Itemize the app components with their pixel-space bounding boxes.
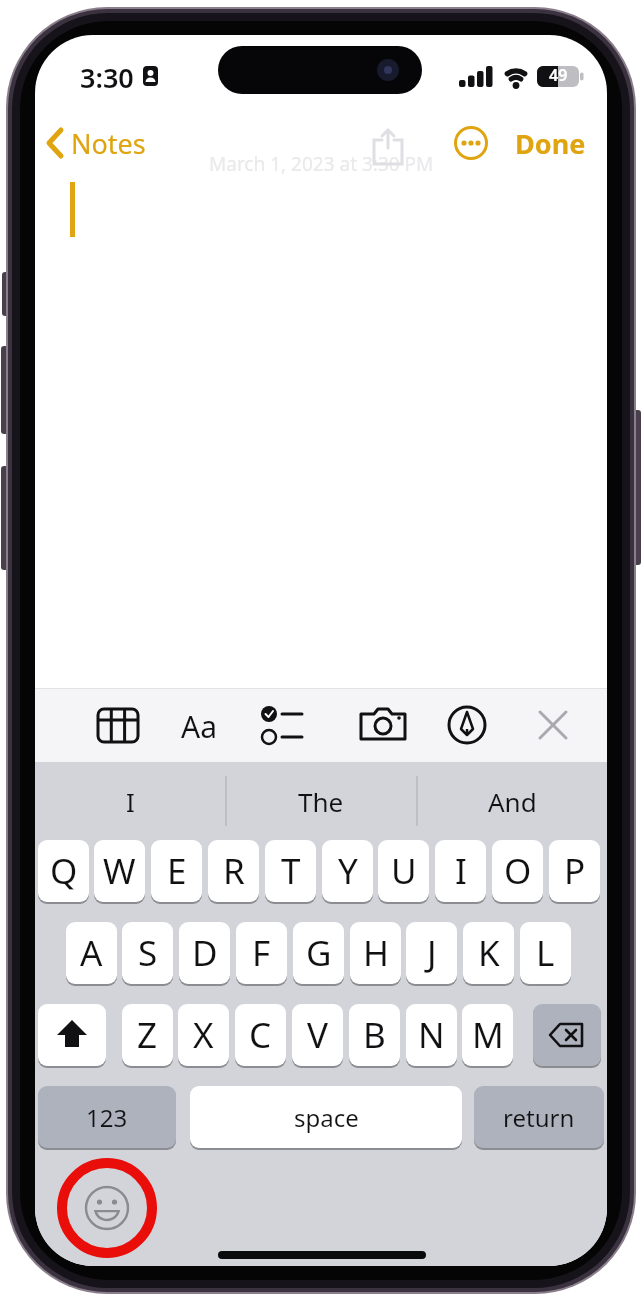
button[interactable]: And bbox=[417, 762, 607, 840]
button[interactable]: T bbox=[265, 840, 316, 902]
button[interactable]: return bbox=[474, 1086, 604, 1148]
button[interactable]: Z bbox=[122, 1004, 173, 1066]
button[interactable]: P bbox=[549, 840, 600, 902]
staticText: P bbox=[564, 847, 586, 895]
staticText: K bbox=[478, 929, 500, 977]
staticText: U bbox=[391, 847, 417, 895]
button[interactable]: space bbox=[190, 1086, 462, 1148]
staticText: return bbox=[503, 1101, 575, 1134]
staticText: S bbox=[138, 929, 158, 977]
staticText: W bbox=[103, 847, 136, 895]
button[interactable]: V bbox=[292, 1004, 343, 1066]
button[interactable] bbox=[372, 128, 404, 168]
button[interactable]: U bbox=[378, 840, 429, 902]
staticText: N bbox=[418, 1011, 445, 1059]
staticText: Notes bbox=[71, 125, 146, 162]
button[interactable]: Q bbox=[38, 840, 89, 902]
staticText: H bbox=[363, 929, 389, 977]
button[interactable]: X bbox=[178, 1004, 229, 1066]
staticText: Aa bbox=[181, 706, 217, 746]
staticText: G bbox=[306, 929, 332, 977]
staticText: V bbox=[307, 1011, 329, 1059]
staticText: C bbox=[249, 1011, 272, 1059]
staticText: O bbox=[504, 847, 532, 895]
staticText: 3:30 bbox=[80, 59, 134, 96]
staticText: Y bbox=[338, 847, 358, 895]
staticText: B bbox=[363, 1011, 386, 1059]
staticText: I bbox=[455, 847, 467, 895]
button[interactable]: Done bbox=[515, 125, 586, 162]
button[interactable]: Notes bbox=[71, 125, 146, 162]
staticText: J bbox=[427, 929, 437, 977]
staticText: Done bbox=[515, 125, 586, 162]
staticText: 123 bbox=[86, 1101, 128, 1134]
button[interactable]: N bbox=[406, 1004, 457, 1066]
button[interactable]: Aa bbox=[173, 706, 225, 746]
staticText: M bbox=[472, 1011, 504, 1059]
staticText: T bbox=[281, 847, 301, 895]
button[interactable]: The bbox=[226, 762, 416, 840]
button[interactable]: D bbox=[179, 922, 230, 984]
button[interactable] bbox=[531, 703, 575, 747]
button[interactable]: Y bbox=[322, 840, 373, 902]
staticText: X bbox=[193, 1011, 214, 1059]
button[interactable]: E bbox=[151, 840, 202, 902]
button[interactable]: R bbox=[208, 840, 259, 902]
button[interactable]: S bbox=[122, 922, 173, 984]
button[interactable] bbox=[41, 121, 161, 165]
button[interactable]: J bbox=[406, 922, 457, 984]
button[interactable] bbox=[38, 1004, 106, 1066]
staticText: A bbox=[80, 929, 103, 977]
button[interactable]: C bbox=[235, 1004, 286, 1066]
staticText: The bbox=[298, 784, 344, 819]
staticText: March 1, 2023 at 3:30 PM bbox=[209, 151, 434, 177]
staticText: And bbox=[488, 784, 537, 819]
button[interactable] bbox=[94, 701, 142, 749]
button[interactable]: I bbox=[35, 762, 225, 840]
staticText: I bbox=[126, 784, 135, 819]
staticText: D bbox=[192, 929, 218, 977]
button[interactable]: I bbox=[435, 840, 486, 902]
button[interactable] bbox=[454, 126, 488, 160]
button[interactable]: G bbox=[293, 922, 344, 984]
staticText: L bbox=[536, 929, 555, 977]
button[interactable]: 123 bbox=[38, 1086, 176, 1148]
button[interactable]: F bbox=[236, 922, 287, 984]
button[interactable]: L bbox=[520, 922, 571, 984]
button[interactable]: 3:30 bbox=[80, 59, 134, 96]
button[interactable] bbox=[443, 701, 491, 749]
staticText: F bbox=[252, 929, 271, 977]
button[interactable] bbox=[359, 701, 407, 749]
button[interactable]: M bbox=[462, 1004, 513, 1066]
button[interactable] bbox=[533, 1004, 601, 1066]
staticText: Q bbox=[50, 847, 78, 895]
staticText: E bbox=[167, 847, 187, 895]
button[interactable]: W bbox=[94, 840, 145, 902]
button[interactable] bbox=[256, 701, 304, 749]
button[interactable]: A bbox=[66, 922, 117, 984]
staticText: R bbox=[223, 847, 245, 895]
button[interactable]: O bbox=[492, 840, 543, 902]
button[interactable]: H bbox=[350, 922, 401, 984]
staticText: Z bbox=[137, 1011, 158, 1059]
staticText: 49 bbox=[549, 64, 568, 85]
button[interactable] bbox=[55, 1158, 159, 1258]
button[interactable]: K bbox=[463, 922, 514, 984]
button[interactable]: B bbox=[349, 1004, 400, 1066]
staticText: space bbox=[294, 1101, 359, 1134]
